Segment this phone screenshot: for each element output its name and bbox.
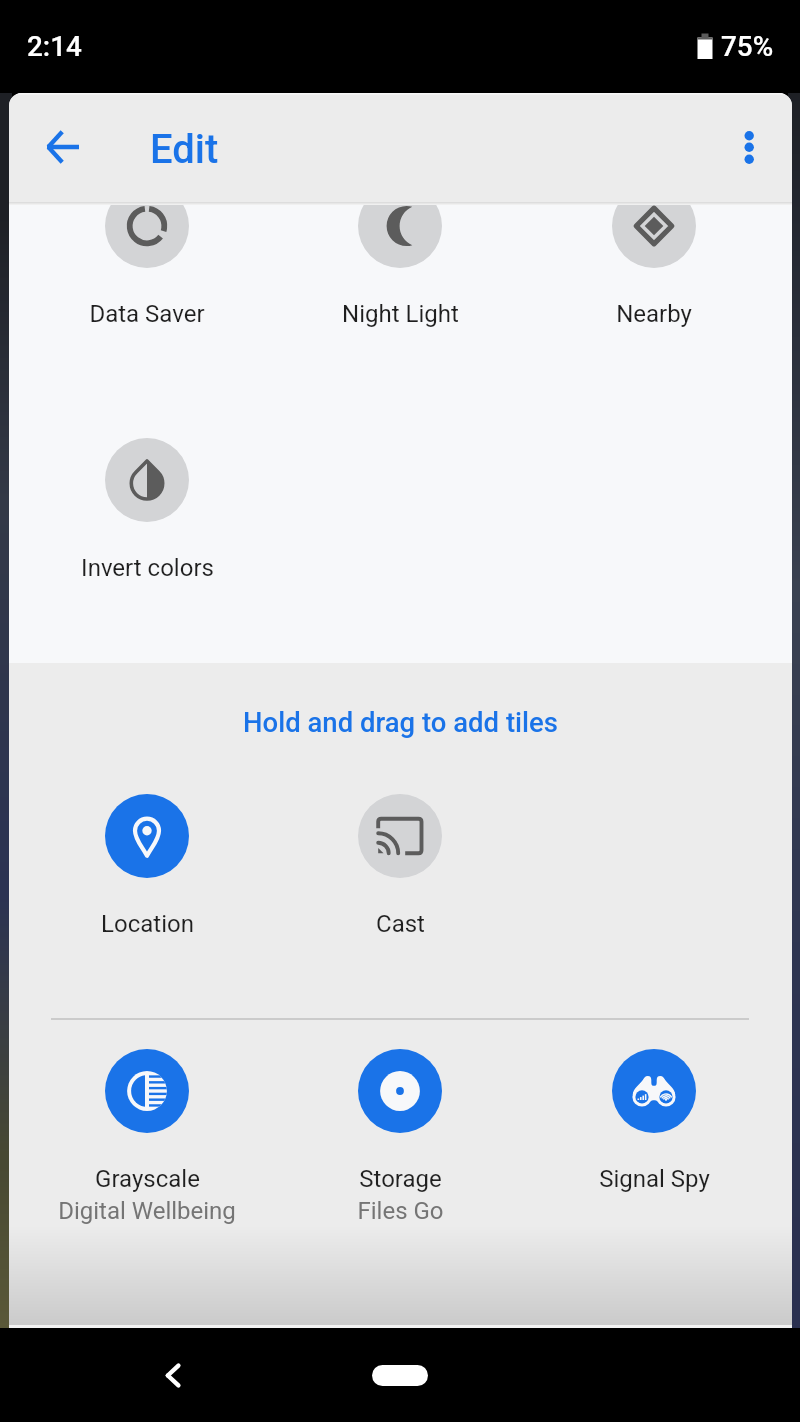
button[interactable]: More options bbox=[719, 117, 779, 177]
button[interactable]: Back bbox=[140, 1338, 200, 1398]
button[interactable]: Cast bbox=[290, 790, 510, 935]
staticText: Cast bbox=[376, 910, 425, 938]
button[interactable]: Grayscale bbox=[37, 1045, 257, 1225]
staticText: Storage bbox=[359, 1165, 442, 1193]
staticText: Hold and drag to add tiles bbox=[9, 706, 792, 738]
button[interactable]: Home bbox=[372, 1365, 428, 1386]
button[interactable]: Night Light bbox=[290, 180, 510, 325]
staticText: 75% bbox=[721, 30, 774, 63]
button[interactable]: Storage bbox=[290, 1045, 510, 1225]
button[interactable]: Invert colors bbox=[37, 434, 257, 579]
button[interactable]: Nearby bbox=[544, 180, 764, 325]
staticText: Data Saver bbox=[89, 300, 205, 328]
staticText: Nearby bbox=[616, 300, 692, 328]
button[interactable]: Signal Spy bbox=[544, 1045, 764, 1190]
staticText: Grayscale bbox=[95, 1165, 200, 1193]
staticText: Invert colors bbox=[81, 554, 214, 582]
staticText: Files Go bbox=[357, 1197, 444, 1225]
staticText: Digital Wellbeing bbox=[58, 1197, 236, 1225]
staticText: Signal Spy bbox=[599, 1165, 710, 1193]
button[interactable]: Navigate up bbox=[33, 117, 93, 177]
button[interactable]: Location bbox=[37, 790, 257, 935]
staticText: 2:14 bbox=[27, 30, 82, 63]
button[interactable]: Data Saver bbox=[37, 180, 257, 325]
staticText: Location bbox=[101, 910, 194, 938]
staticText: Night Light bbox=[342, 300, 459, 328]
staticText: Edit bbox=[150, 126, 219, 173]
